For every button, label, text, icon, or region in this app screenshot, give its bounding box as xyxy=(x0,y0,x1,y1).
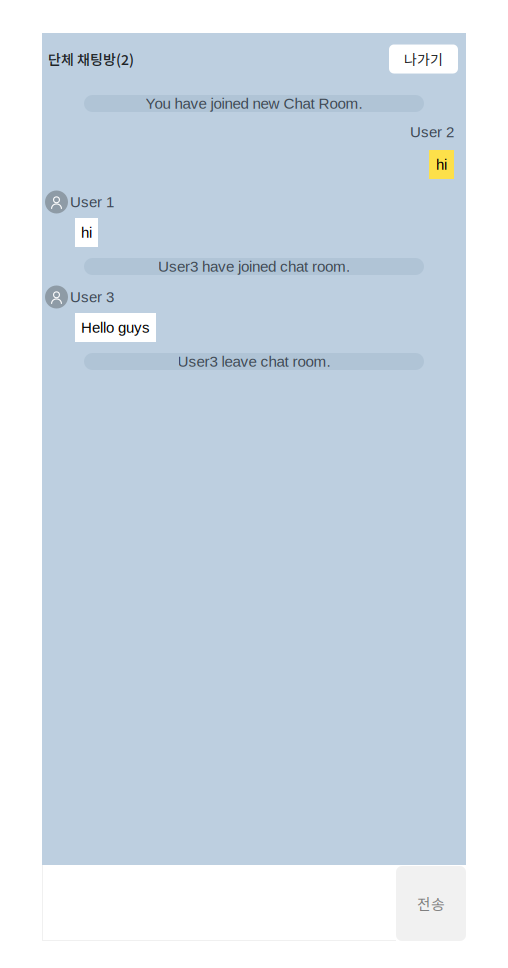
staticText: User3 leave chat room. xyxy=(177,353,330,370)
staticText: You have joined new Chat Room. xyxy=(145,95,362,112)
staticText: 나가기 xyxy=(404,49,443,69)
staticText: User3 have joined chat room. xyxy=(158,258,350,275)
staticText: User 3 xyxy=(70,289,114,305)
staticText: User 1 xyxy=(70,194,114,210)
staticText: User 2 xyxy=(410,124,454,140)
button[interactable]: 나가기 xyxy=(389,44,458,73)
staticText: hi xyxy=(436,156,447,173)
staticText: hi xyxy=(81,224,92,241)
staticText: 단체 채팅방(2) xyxy=(48,49,134,69)
staticText: 전송 xyxy=(417,893,445,914)
button[interactable]: 전송 xyxy=(396,866,466,941)
staticText: Hello guys xyxy=(81,319,150,336)
